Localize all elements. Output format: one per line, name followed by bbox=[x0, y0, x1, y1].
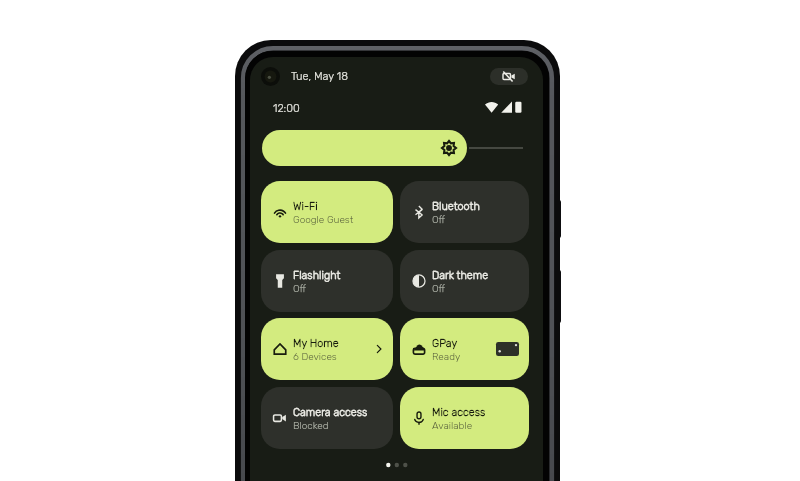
staticText: Off bbox=[432, 283, 446, 295]
staticText: Blocked bbox=[293, 420, 329, 432]
staticText: Off bbox=[432, 214, 446, 226]
button[interactable]: My Home bbox=[261, 318, 393, 380]
staticText: 6 Devices bbox=[293, 351, 337, 363]
button[interactable]: Dark theme bbox=[400, 250, 529, 312]
staticText: Tue, May 18 bbox=[291, 70, 348, 83]
staticText: Available bbox=[432, 420, 473, 432]
button[interactable]: Brightness bbox=[262, 130, 467, 166]
staticText: Ready bbox=[432, 351, 461, 363]
staticText: 12:00 bbox=[273, 102, 300, 115]
staticText: Mic access bbox=[432, 406, 486, 419]
button[interactable]: Flashlight bbox=[261, 250, 393, 312]
staticText: Flashlight bbox=[293, 269, 341, 282]
staticText: Wi-Fi bbox=[293, 200, 318, 213]
button[interactable]: Camera access bbox=[261, 387, 393, 449]
button[interactable]: Bluetooth bbox=[400, 181, 529, 243]
button[interactable]: Camera access blocked bbox=[490, 68, 528, 85]
staticText: Camera access bbox=[293, 406, 368, 419]
staticText: My Home bbox=[293, 337, 339, 350]
button[interactable]: Wi-Fi bbox=[261, 181, 393, 243]
staticText: Dark theme bbox=[432, 269, 489, 282]
button[interactable]: Mic access bbox=[400, 387, 529, 449]
button[interactable]: GPay bbox=[400, 318, 529, 380]
staticText: GPay bbox=[432, 337, 458, 350]
staticText: Off bbox=[293, 283, 307, 295]
staticText: Google Guest bbox=[293, 214, 354, 226]
staticText: Bluetooth bbox=[432, 200, 480, 213]
